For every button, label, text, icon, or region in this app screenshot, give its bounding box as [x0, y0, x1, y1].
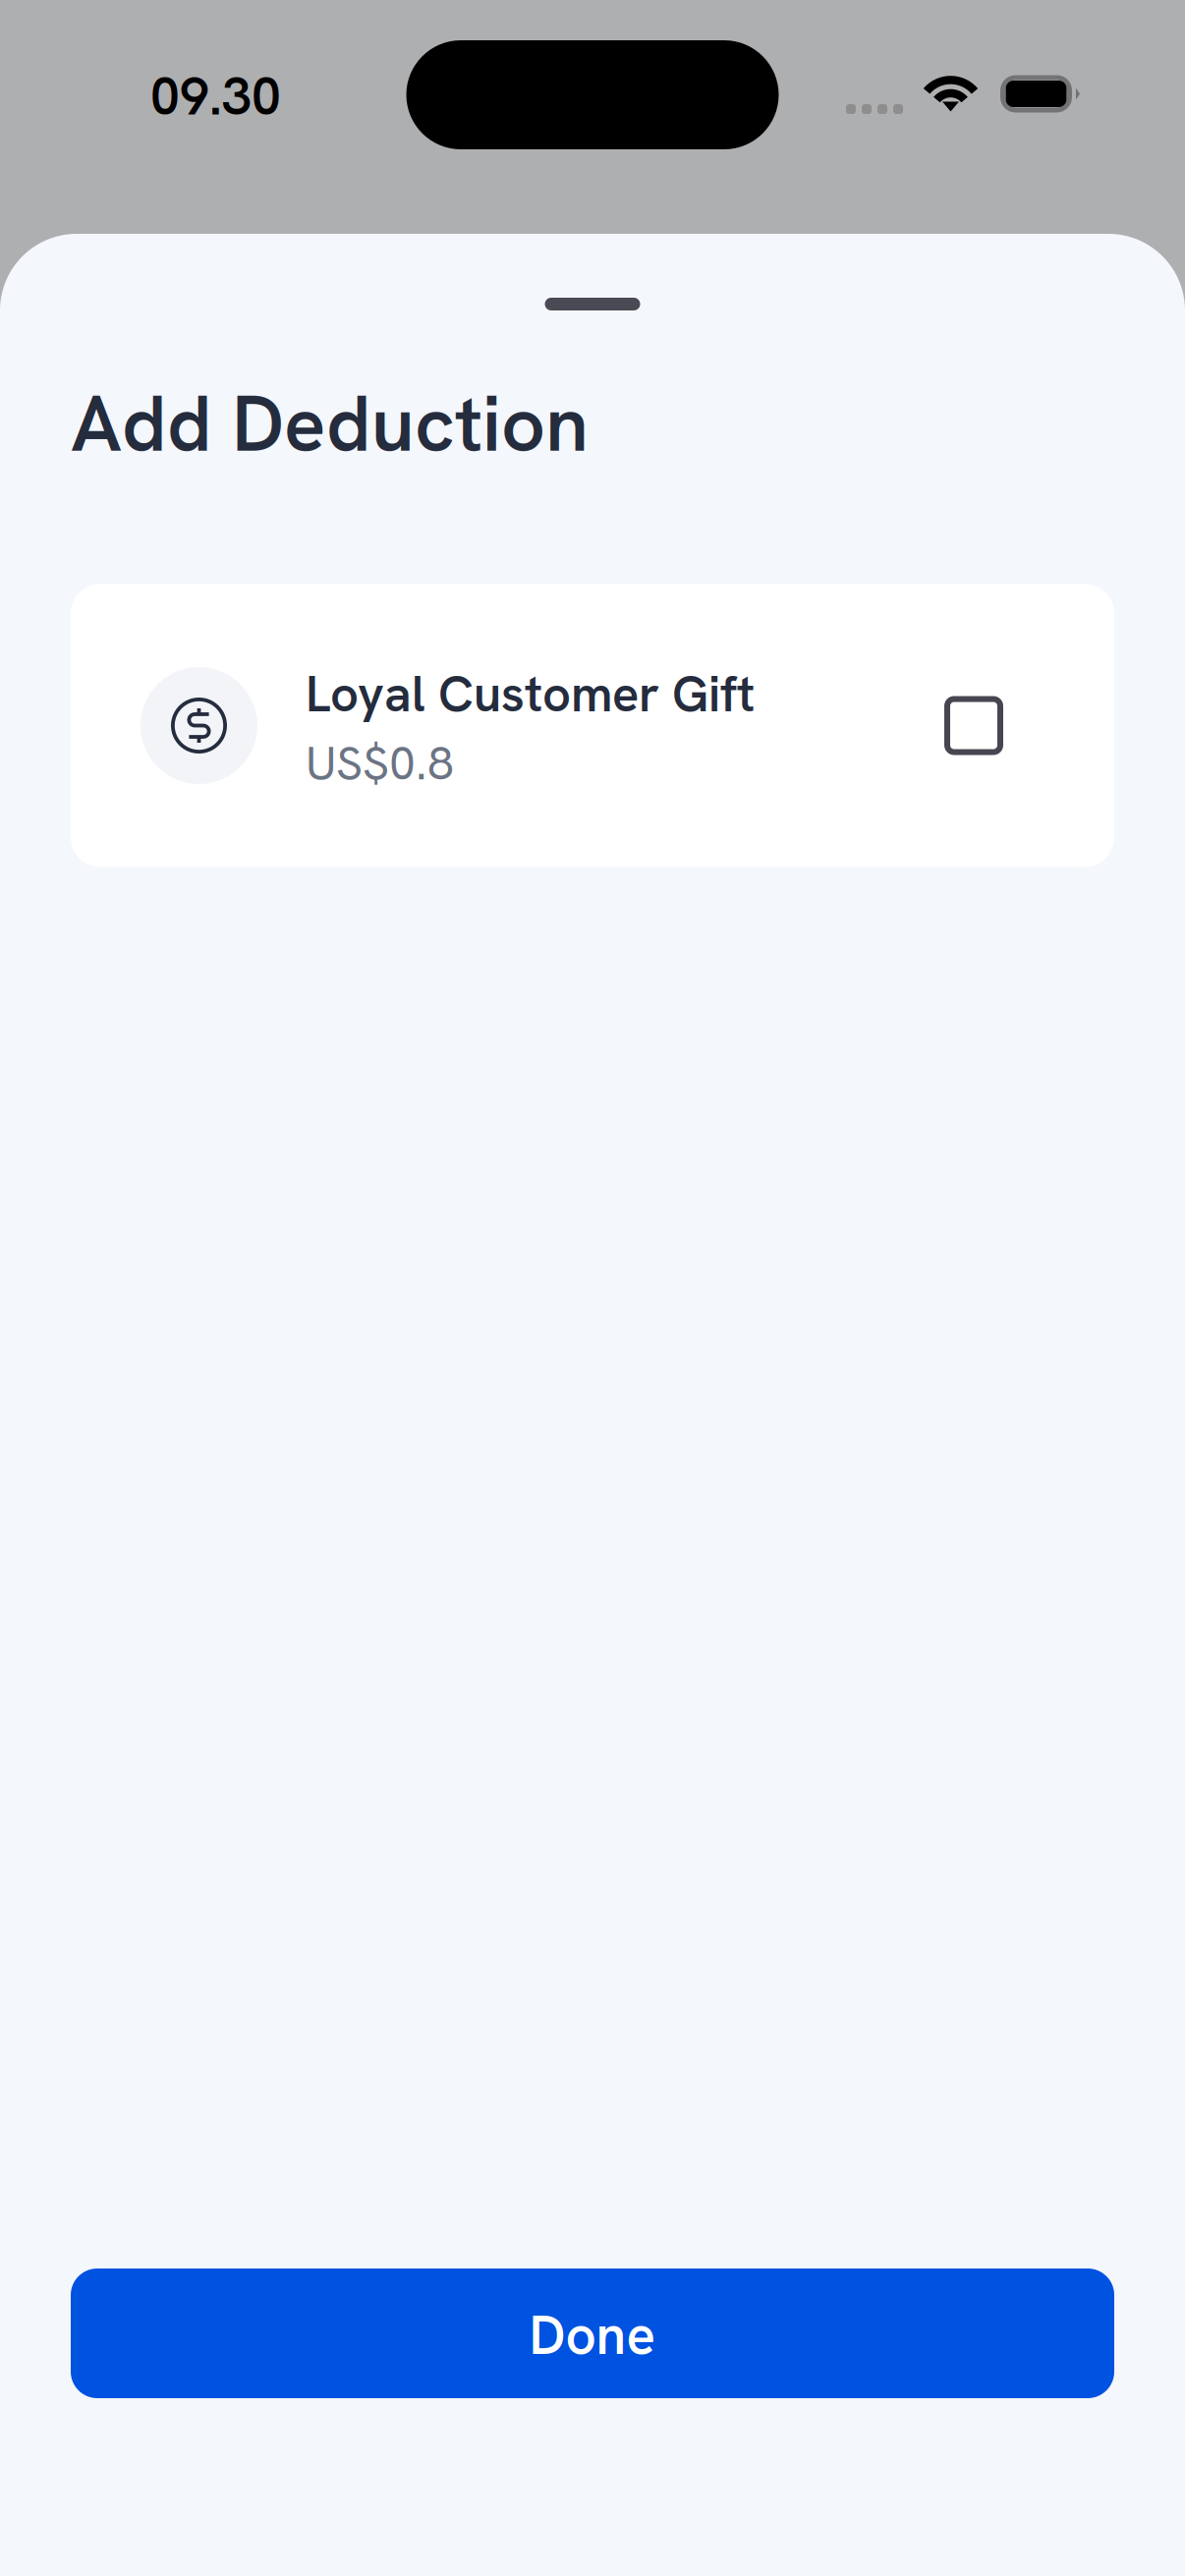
staticText: 09.30: [150, 62, 281, 130]
staticText: Loyal Customer Gift: [306, 661, 755, 726]
button[interactable]: Done: [71, 2268, 1114, 2398]
staticText: Done: [529, 2300, 656, 2370]
button[interactable]: Loyal Customer Gift: [71, 584, 1114, 867]
staticText: US$0.8: [306, 732, 454, 794]
staticText: Add Deduction: [71, 373, 589, 474]
